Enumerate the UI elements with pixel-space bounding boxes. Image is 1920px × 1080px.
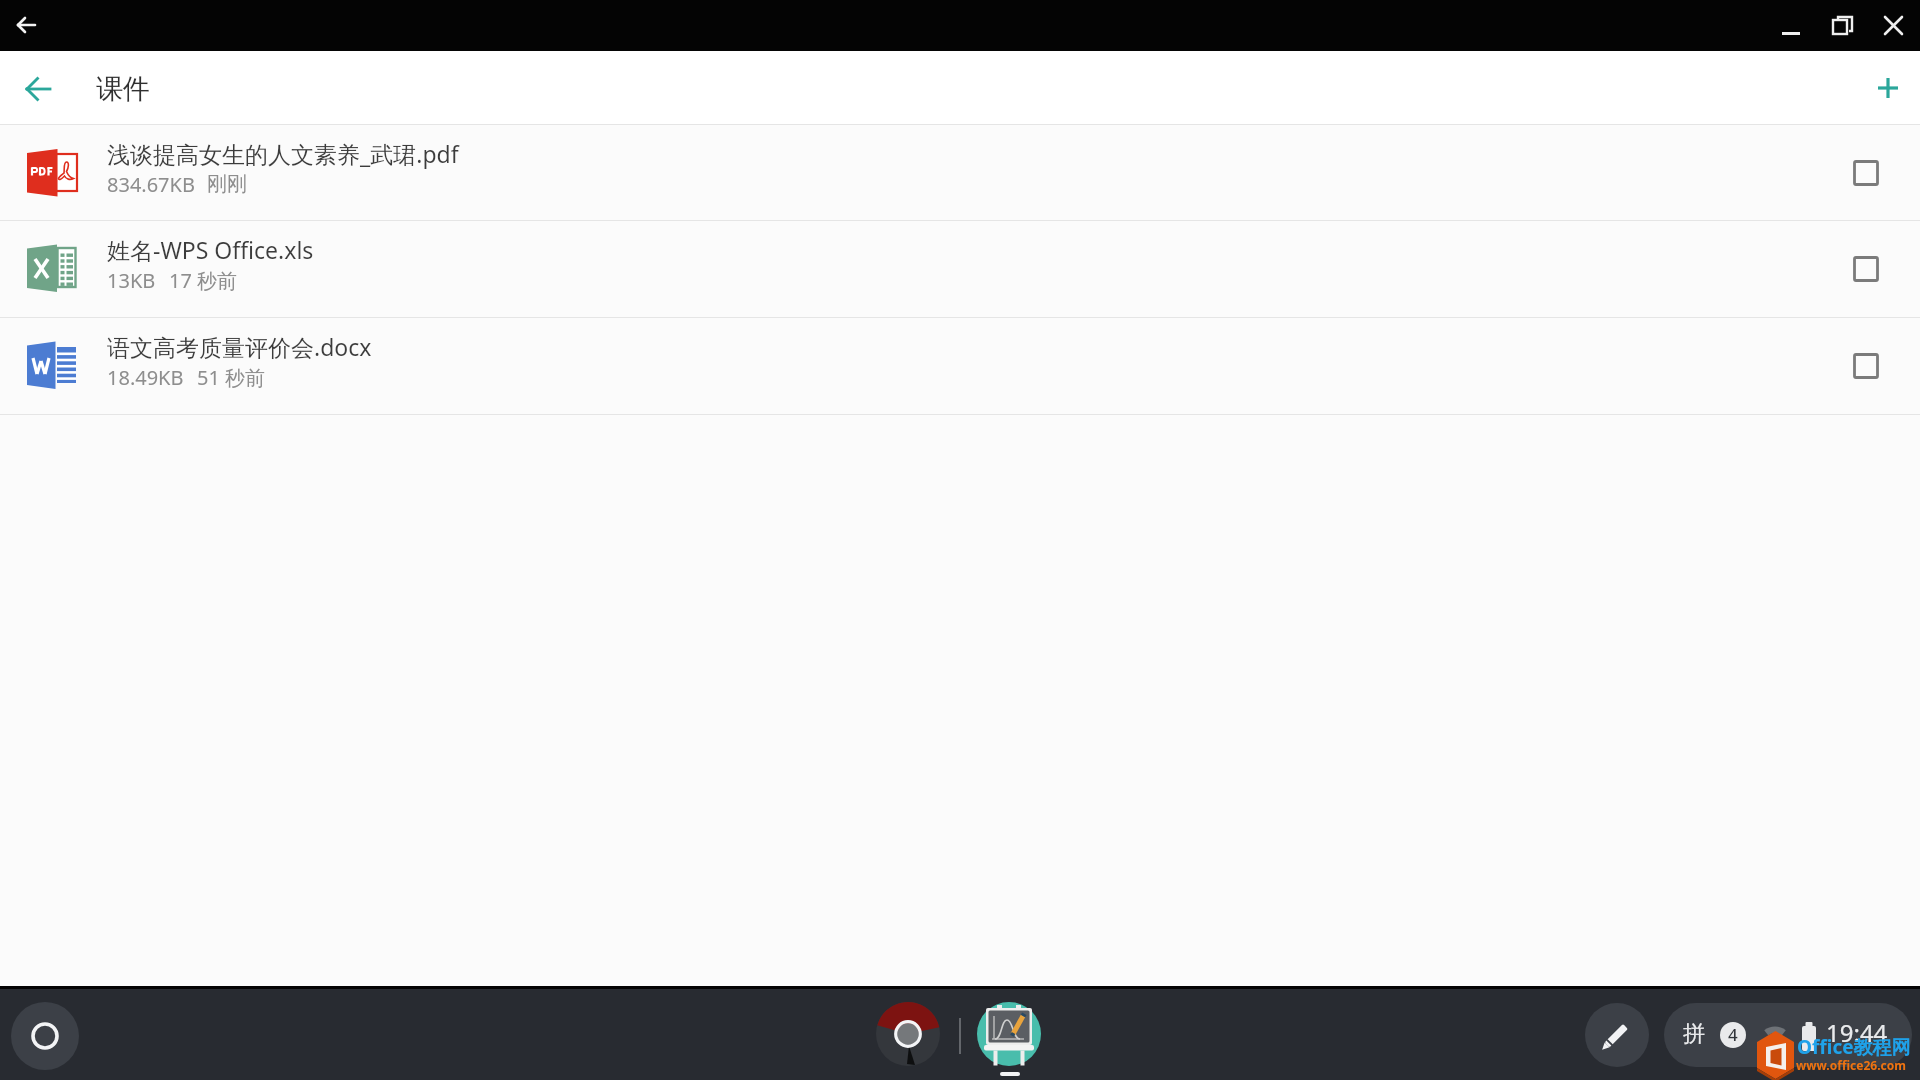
staticText: 姓名-WPS Office.xls — [107, 234, 314, 265]
staticText: 13KB — [107, 267, 156, 294]
button[interactable] — [10, 9, 42, 41]
button[interactable] — [1585, 1003, 1649, 1067]
button[interactable] — [1843, 150, 1889, 196]
button[interactable] — [1871, 71, 1905, 105]
staticText: 课件 — [96, 72, 150, 106]
button[interactable] — [1664, 1003, 1912, 1067]
button[interactable] — [1776, 10, 1806, 40]
button[interactable] — [1843, 343, 1889, 389]
staticText: 834.67KB — [107, 171, 195, 198]
staticText: 4 — [1728, 1023, 1738, 1046]
button[interactable] — [876, 1002, 940, 1066]
button[interactable] — [0, 318, 1920, 415]
button[interactable] — [977, 1002, 1041, 1066]
button[interactable] — [1828, 10, 1858, 40]
staticText: www.office26.com — [1796, 1057, 1906, 1073]
staticText: 19:44 — [1826, 1016, 1888, 1049]
button[interactable] — [1843, 246, 1889, 292]
button[interactable] — [0, 221, 1920, 318]
button[interactable] — [1878, 10, 1910, 42]
staticText: 拼 — [1683, 1020, 1705, 1048]
button[interactable] — [0, 125, 1920, 221]
staticText: 17 秒前 — [169, 267, 238, 294]
staticText: 语文高考质量评价会.docx — [107, 331, 372, 362]
staticText: 刚刚 — [207, 172, 247, 197]
button[interactable] — [22, 72, 56, 106]
staticText: 51 秒前 — [197, 364, 266, 391]
button[interactable] — [11, 1002, 79, 1070]
staticText: 18.49KB — [107, 364, 184, 391]
staticText: 浅谈提高女生的人文素养_武珺.pdf — [107, 138, 459, 169]
staticText: Office教程网 — [1797, 1034, 1911, 1060]
